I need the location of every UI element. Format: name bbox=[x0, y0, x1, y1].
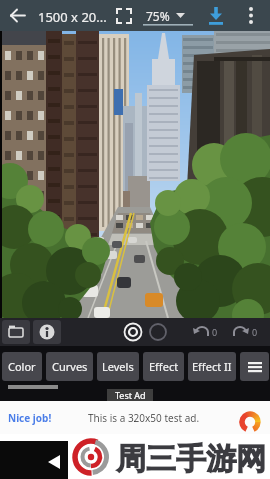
button[interactable] bbox=[2, 320, 30, 344]
button[interactable]: 75% bbox=[142, 2, 194, 28]
staticText: Nice job! bbox=[8, 411, 52, 425]
staticText: Effect bbox=[149, 359, 179, 374]
button[interactable]: Nice job! bbox=[0, 401, 270, 434]
button[interactable]: Levels bbox=[97, 352, 139, 381]
staticText: 75% bbox=[146, 8, 170, 24]
button[interactable]: Effect II bbox=[188, 352, 236, 381]
staticText: Curves bbox=[52, 359, 88, 374]
staticText: 0 bbox=[252, 326, 258, 338]
staticText: 0 bbox=[212, 326, 218, 338]
staticText: Test Ad bbox=[115, 389, 146, 401]
button[interactable] bbox=[238, 3, 264, 29]
button[interactable]: Color bbox=[2, 352, 42, 381]
button[interactable] bbox=[112, 4, 136, 28]
button[interactable] bbox=[240, 352, 269, 381]
button[interactable]: 周三手游网 bbox=[0, 434, 270, 479]
button[interactable]: Curves bbox=[46, 352, 93, 381]
staticText: This is a 320x50 test ad. bbox=[88, 411, 200, 425]
staticText: Color bbox=[8, 359, 36, 374]
button[interactable] bbox=[119, 318, 147, 346]
button[interactable] bbox=[33, 320, 61, 344]
staticText: Levels bbox=[102, 359, 134, 374]
button[interactable]: 0 bbox=[188, 318, 222, 346]
button[interactable]: Effect bbox=[143, 352, 184, 381]
button[interactable] bbox=[203, 3, 229, 29]
button[interactable] bbox=[6, 3, 31, 28]
staticText: 1500 x 20... bbox=[38, 8, 107, 26]
button[interactable] bbox=[144, 318, 172, 346]
staticText: Effect II bbox=[192, 359, 232, 374]
button[interactable]: 0 bbox=[228, 318, 262, 346]
staticText: 周三手游网 bbox=[116, 440, 266, 478]
